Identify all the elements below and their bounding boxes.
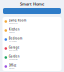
staticText: Living Room [9,19,27,22]
staticText: AC running [9,40,17,42]
staticText: Standby [9,67,15,69]
staticText: Bedroom [9,37,23,40]
button[interactable]: Bedroom [2,35,61,44]
staticText: Garden [9,55,20,58]
staticText: Sprinkler idle [9,58,18,60]
button[interactable]: Kitchen [2,26,61,35]
staticText: Garage [9,46,20,49]
button[interactable]: Living Room [2,17,61,26]
staticText: Door closed [9,49,18,51]
staticText: Kitchen [9,28,20,31]
staticText: Office [9,64,17,67]
button[interactable]: Office [2,62,61,71]
staticText: Smart Home [20,1,44,7]
button[interactable]: Garage [2,44,61,53]
button[interactable]: Garden [2,53,61,62]
staticText: 3 devices on [9,22,18,24]
staticText: Lights off [9,31,15,33]
